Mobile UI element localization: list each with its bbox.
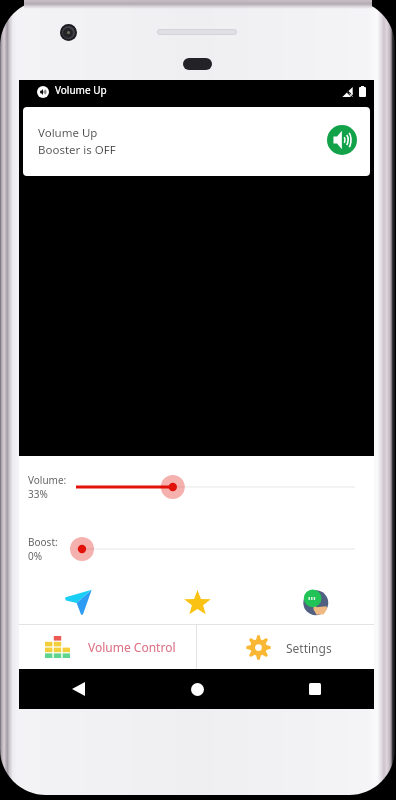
staticText: Settings xyxy=(286,640,332,656)
button[interactable]: Home xyxy=(138,669,256,709)
staticText: Boost: xyxy=(28,535,58,549)
button[interactable]: Boost: xyxy=(62,534,362,564)
staticText: Volume Control xyxy=(88,639,176,655)
staticText: Volume Up xyxy=(55,83,107,97)
button[interactable]: Back xyxy=(19,669,138,709)
button[interactable]: Settings xyxy=(197,625,374,669)
staticText: Volume: xyxy=(28,473,67,487)
button[interactable]: Recent apps xyxy=(256,669,374,709)
staticText: Volume Up xyxy=(38,125,98,141)
button[interactable]: Volume: xyxy=(62,472,362,502)
button[interactable]: Rate app xyxy=(138,582,256,622)
staticText: 33% xyxy=(28,487,48,501)
button[interactable]: Volume Control xyxy=(19,625,196,669)
button[interactable]: Buy pro version xyxy=(256,582,374,622)
staticText: Booster is OFF xyxy=(38,142,116,158)
button[interactable]: Volume Up xyxy=(23,107,370,176)
button[interactable]: Toggle volume booster xyxy=(327,125,357,155)
staticText: 0% xyxy=(28,549,43,563)
button[interactable]: Share app xyxy=(19,582,138,622)
